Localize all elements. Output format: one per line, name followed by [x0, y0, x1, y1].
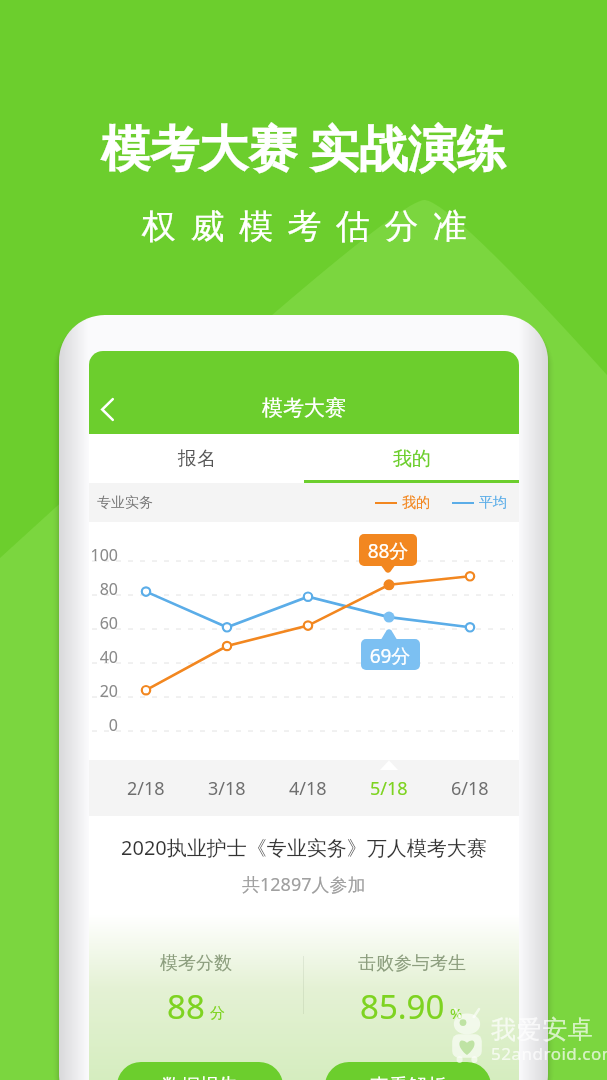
staticText: 击败参与考生: [358, 952, 466, 975]
staticText: 分: [210, 1004, 225, 1023]
button[interactable]: 6/18: [430, 760, 510, 816]
button[interactable]: 数据报告: [117, 1062, 283, 1080]
staticText: 模考大赛 实战演练: [101, 114, 506, 181]
staticText: 0: [89, 714, 118, 736]
button[interactable]: Back: [89, 386, 125, 432]
staticText: 3/18: [208, 776, 246, 801]
staticText: 我爱安卓: [491, 1014, 593, 1045]
staticText: 查看解析: [370, 1074, 446, 1080]
staticText: 52android.com: [491, 1042, 607, 1065]
staticText: 20: [89, 680, 118, 702]
staticText: 平均: [479, 494, 507, 512]
button[interactable]: 我的: [375, 494, 430, 512]
staticText: 60: [89, 612, 118, 634]
staticText: 85.90: [360, 984, 445, 1028]
staticText: 80: [89, 578, 118, 600]
staticText: %: [450, 1003, 463, 1023]
staticText: 权威模考估分准: [142, 205, 482, 248]
staticText: 88分: [365, 538, 411, 564]
staticText: 共12897人参加: [242, 872, 366, 897]
staticText: 报名: [178, 447, 216, 471]
staticText: 6/18: [451, 776, 489, 801]
staticText: 专业实务: [97, 494, 153, 512]
staticText: 我的: [393, 447, 431, 471]
staticText: 100: [89, 544, 118, 566]
staticText: 数据报告: [162, 1074, 238, 1080]
staticText: 模考分数: [160, 952, 232, 975]
staticText: 88: [167, 984, 205, 1028]
button[interactable]: 查看解析: [325, 1062, 491, 1080]
button[interactable]: 报名: [89, 434, 304, 483]
button[interactable]: 3/18: [187, 760, 267, 816]
staticText: 我的: [402, 494, 430, 512]
button[interactable]: 5/18: [349, 760, 429, 816]
button[interactable]: 2/18: [106, 760, 186, 816]
staticText: 2020执业护士《专业实务》万人模考大赛: [121, 834, 487, 861]
button[interactable]: 平均: [452, 494, 507, 512]
staticText: 40: [89, 646, 118, 668]
staticText: 4/18: [289, 776, 327, 801]
button[interactable]: 4/18: [268, 760, 348, 816]
staticText: 2/18: [127, 776, 165, 801]
staticText: 模考大赛: [262, 395, 346, 421]
button[interactable]: 我的: [304, 434, 519, 483]
staticText: 69分: [367, 643, 413, 669]
staticText: 5/18: [370, 776, 408, 801]
